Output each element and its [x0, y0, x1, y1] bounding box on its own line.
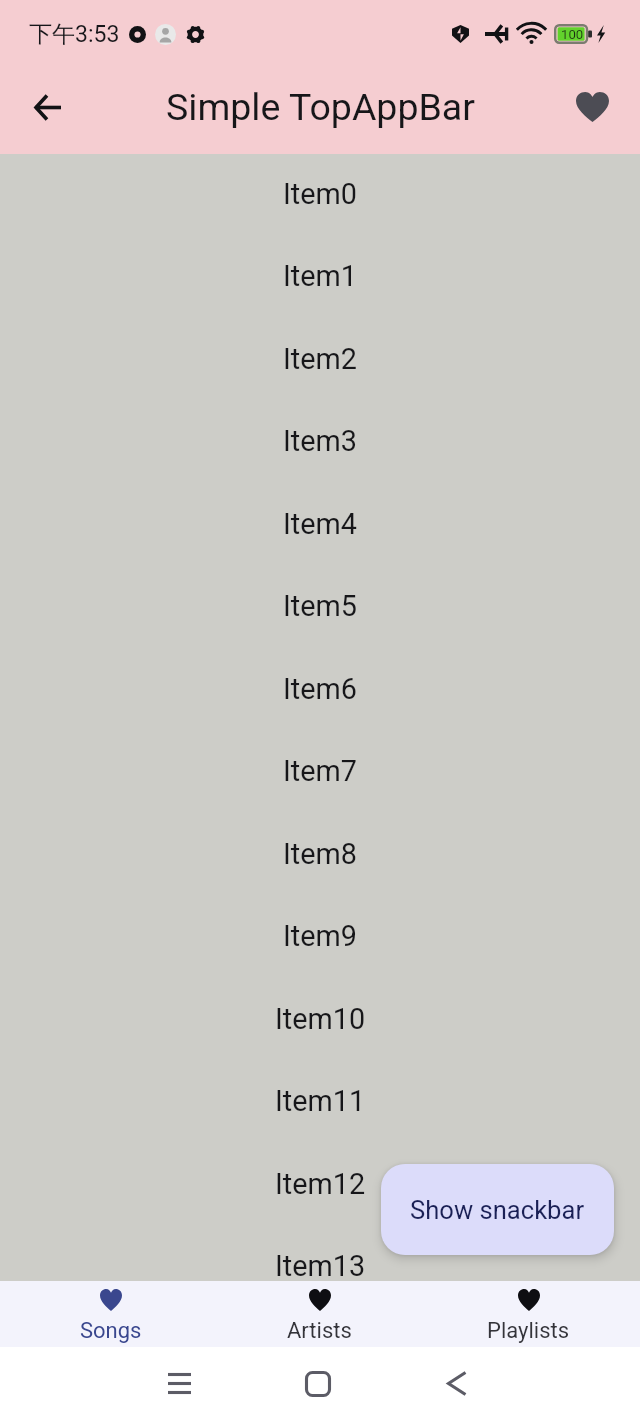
button[interactable]: Songs [7, 1281, 215, 1347]
button[interactable]: Item7 [0, 729, 640, 812]
staticText: Playlists [487, 1318, 570, 1344]
button[interactable]: Item8 [0, 812, 640, 895]
button[interactable]: Item13 [0, 1224, 640, 1281]
button[interactable]: Item10 [0, 977, 640, 1060]
staticText: Item12 [275, 1167, 366, 1201]
button[interactable]: Item9 [0, 894, 640, 977]
staticText: Item1 [283, 259, 357, 293]
staticText: Item10 [275, 1002, 366, 1036]
button[interactable]: Back [447, 1371, 467, 1396]
button[interactable]: Item2 [0, 317, 640, 400]
button[interactable]: Back [14, 73, 82, 141]
staticText: Item2 [283, 342, 357, 376]
staticText: Item9 [283, 919, 357, 953]
staticText: Item8 [283, 837, 357, 871]
button[interactable]: Item3 [0, 399, 640, 482]
staticText: Item7 [283, 754, 357, 788]
staticText: Artists [287, 1318, 352, 1344]
button[interactable]: Favorite [558, 73, 626, 141]
button[interactable]: Artists [215, 1281, 424, 1347]
staticText: Item3 [283, 424, 357, 458]
button[interactable]: Show snackbar [381, 1164, 614, 1255]
staticText: Item13 [275, 1249, 366, 1281]
button[interactable]: Item11 [0, 1059, 640, 1142]
button[interactable]: Item1 [0, 234, 640, 317]
staticText: Item11 [275, 1084, 366, 1118]
button[interactable]: Home [305, 1371, 331, 1397]
button[interactable]: Item6 [0, 647, 640, 730]
staticText: Show snackbar [410, 1195, 585, 1225]
button[interactable]: Item0 [0, 154, 640, 235]
button[interactable]: Item4 [0, 482, 640, 565]
staticText: Item6 [283, 672, 357, 706]
staticText: 下午3:53 [29, 20, 120, 49]
staticText: Item0 [283, 177, 357, 211]
staticText: Simple TopAppBar [166, 85, 475, 129]
button[interactable]: Item12 [0, 1142, 640, 1225]
staticText: Item4 [283, 507, 357, 541]
staticText: Songs [80, 1318, 142, 1344]
button[interactable]: Recent apps [168, 1373, 191, 1394]
staticText: Item5 [283, 589, 357, 623]
button[interactable]: Playlists [424, 1281, 633, 1347]
staticText: 100 [561, 27, 584, 42]
button[interactable]: Item5 [0, 564, 640, 647]
